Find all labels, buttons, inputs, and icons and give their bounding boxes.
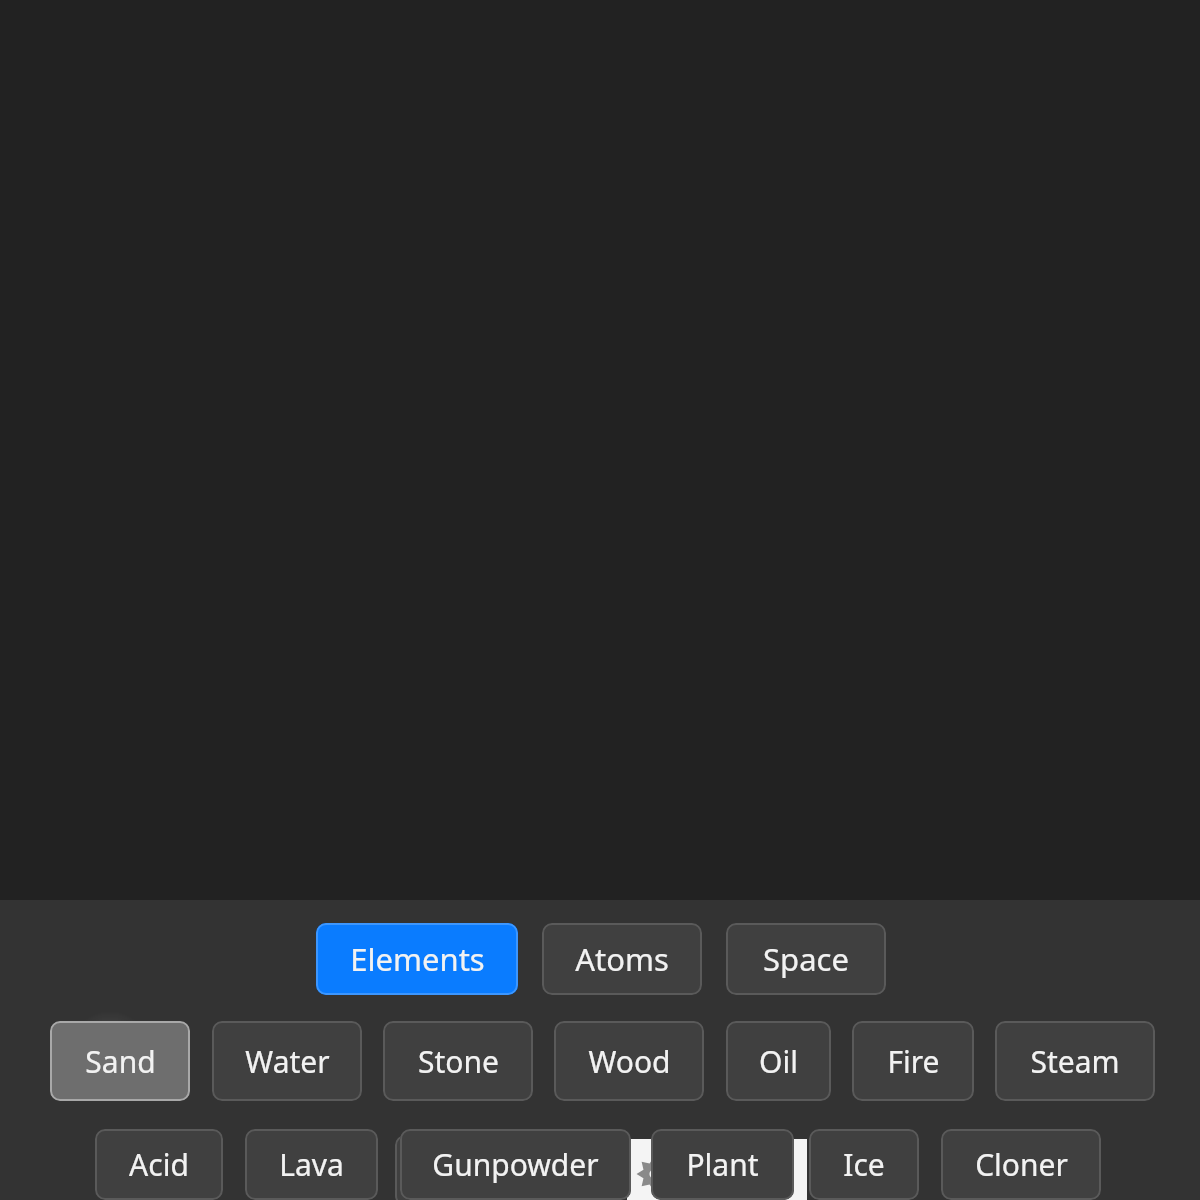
button[interactable]: Oil bbox=[726, 1021, 831, 1101]
staticText: Wood bbox=[588, 1041, 671, 1082]
staticText: Steam bbox=[1030, 1041, 1120, 1082]
staticText: Atoms bbox=[575, 938, 669, 980]
button[interactable]: Fire bbox=[852, 1021, 974, 1101]
button[interactable]: Wood bbox=[554, 1021, 704, 1101]
button[interactable]: Cloner bbox=[941, 1129, 1101, 1200]
button[interactable]: Acid bbox=[95, 1129, 223, 1200]
button[interactable]: Water bbox=[212, 1021, 362, 1101]
button[interactable]: Gunpowder bbox=[400, 1129, 631, 1200]
button[interactable]: Space bbox=[726, 923, 886, 995]
button[interactable]: Atoms bbox=[542, 923, 702, 995]
button[interactable]: Steam bbox=[995, 1021, 1155, 1101]
button[interactable]: Lava bbox=[245, 1129, 378, 1200]
button[interactable]: Settings bbox=[627, 1139, 807, 1200]
staticText: Fire bbox=[887, 1041, 940, 1082]
staticText: Ice bbox=[843, 1144, 885, 1185]
staticText: Plant bbox=[686, 1144, 759, 1185]
staticText: Elements bbox=[350, 938, 485, 980]
button[interactable]: Plant bbox=[651, 1129, 794, 1200]
button[interactable] bbox=[395, 1135, 435, 1200]
staticText: Gunpowder bbox=[432, 1144, 599, 1185]
button[interactable]: Elements bbox=[316, 923, 518, 995]
staticText: Oil bbox=[759, 1041, 798, 1082]
button[interactable]: Ice bbox=[809, 1129, 919, 1200]
button[interactable]: Stone bbox=[383, 1021, 533, 1101]
button[interactable]: Sand bbox=[50, 1021, 190, 1101]
staticText: Cloner bbox=[975, 1144, 1068, 1185]
staticText: Lava bbox=[279, 1144, 344, 1185]
staticText: Acid bbox=[129, 1144, 189, 1185]
staticText: Space bbox=[763, 938, 849, 980]
staticText: Sand bbox=[85, 1041, 156, 1082]
staticText: Stone bbox=[418, 1041, 499, 1082]
staticText: Water bbox=[245, 1041, 330, 1082]
